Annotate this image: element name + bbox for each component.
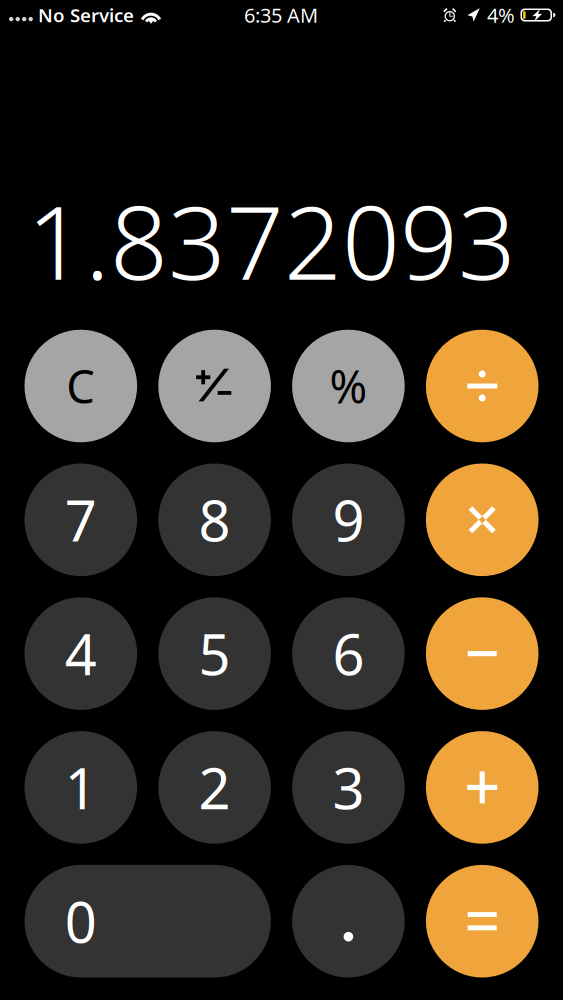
staticText: 0 [65,884,97,958]
staticText: C [66,356,95,416]
staticText: 7 [65,483,97,557]
button[interactable]: 0 [24,865,271,977]
button[interactable]: Decimal point [292,865,405,977]
staticText: 3 [332,750,364,825]
staticText: No Service [38,3,134,27]
button[interactable]: Multiply [426,463,538,576]
button[interactable]: 7 [24,463,137,576]
button[interactable]: 1 [24,731,137,844]
button[interactable]: C [24,330,137,442]
button[interactable]: % [292,330,405,442]
button[interactable]: Plus Minus [158,330,271,442]
button[interactable]: 3 [292,731,405,844]
staticText: 8 [199,483,231,557]
staticText: 6 [332,616,364,691]
staticText: 4% [487,2,515,28]
staticText: 6:35 AM [244,2,318,28]
button[interactable]: Subtract [426,597,538,710]
staticText: % [329,356,367,416]
button[interactable]: Divide [426,330,538,442]
staticText: 1.8372093 [27,173,516,308]
button[interactable]: 9 [292,463,405,576]
staticText: 4 [65,616,97,691]
button[interactable]: 5 [158,597,271,710]
button[interactable]: 2 [158,731,271,844]
staticText: 2 [199,750,231,825]
staticText: 5 [199,616,231,691]
button[interactable]: Equals [426,865,538,977]
staticText: 9 [332,483,364,557]
button[interactable]: 8 [158,463,271,576]
button[interactable]: 4 [24,597,137,710]
button[interactable]: Add [426,731,538,844]
staticText: 1 [65,750,97,825]
button[interactable]: 6 [292,597,405,710]
